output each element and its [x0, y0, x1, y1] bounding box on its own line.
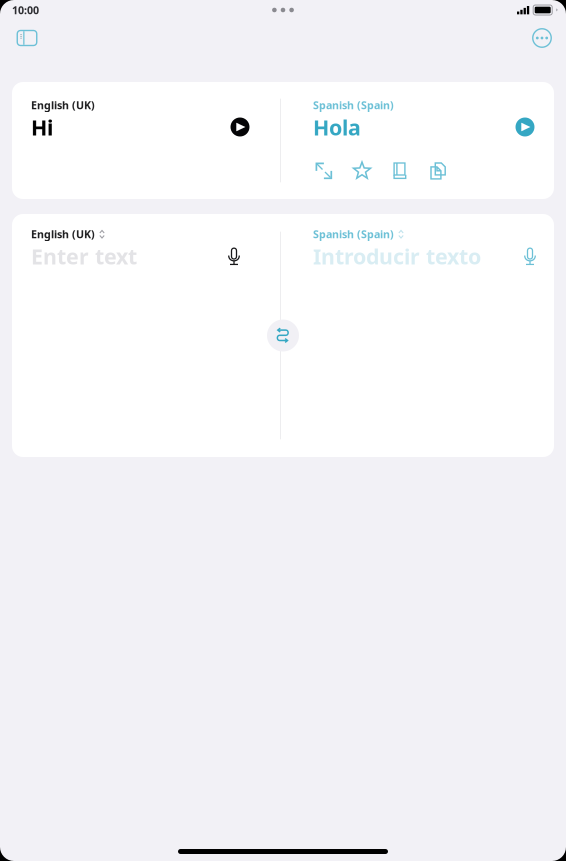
staticText: English (UK) [31, 227, 95, 241]
staticText: Hola [313, 113, 361, 141]
staticText: Spanish (Spain) [313, 227, 394, 241]
button[interactable]: Play translated text [510, 112, 540, 142]
button[interactable]: Show Sidebar [9, 23, 45, 53]
button[interactable]: Dictate in Spanish [516, 242, 544, 270]
staticText: Enter text [31, 242, 137, 270]
staticText: English (UK) [31, 98, 95, 112]
staticText: Introducir texto [313, 242, 481, 270]
button[interactable]: English (UK) [31, 227, 105, 241]
button[interactable]: Open dictionary [389, 160, 411, 182]
staticText: Hi [31, 113, 53, 141]
button[interactable]: Dictate in English [220, 242, 248, 270]
button[interactable]: Play source text [225, 112, 255, 142]
staticText: Spanish (Spain) [313, 98, 394, 112]
staticText: 10:00 [12, 3, 39, 17]
button[interactable]: Add to favourites [351, 160, 373, 182]
button[interactable]: Swap languages [266, 318, 300, 352]
button[interactable]: More [526, 23, 558, 53]
button[interactable]: Spanish (Spain) [313, 227, 404, 241]
button[interactable]: Full screen [313, 160, 335, 182]
button[interactable]: Copy translation [427, 160, 449, 182]
